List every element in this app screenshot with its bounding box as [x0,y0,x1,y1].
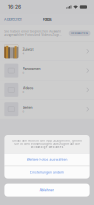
staticText: Um auf alle Fotos in der App zuzugreifen… [12,139,82,149]
staticText: Zuletzt [22,47,33,52]
staticText: Weitere Fotos auswählen [26,157,67,161]
button[interactable]: Panoramen [0,61,94,80]
staticText: Ablehnen [39,188,54,192]
staticText: Fotos [42,17,51,22]
button[interactable]: Weitere Fotos auswählen [4,153,90,166]
staticText: 16:26 [8,4,21,10]
staticText: Einstellungen ändern [30,170,64,174]
staticText: Panoramen [22,67,40,71]
button[interactable]: Abbrechen [0,14,26,25]
button[interactable]: Ablehnen [4,184,90,197]
staticText: Serien [22,105,32,109]
button[interactable]: Einstellungen ändern [4,166,90,179]
staticText: 0 [22,71,24,74]
staticText: Videos [22,86,33,90]
button[interactable]: Videos [0,80,94,99]
button[interactable]: Serien [0,100,94,119]
staticText: Abbrechen [4,17,22,22]
staticText: VERWALTEN [71,32,88,35]
button[interactable]: Zuletzt [0,42,94,61]
staticText: Sie haben einer begrenzten Auswahl ausge… [4,30,61,37]
staticText: 0 [22,110,24,113]
staticText: 0 [22,91,24,94]
staticText: 4 [22,52,24,55]
button[interactable]: VERWALTEN [69,30,90,36]
